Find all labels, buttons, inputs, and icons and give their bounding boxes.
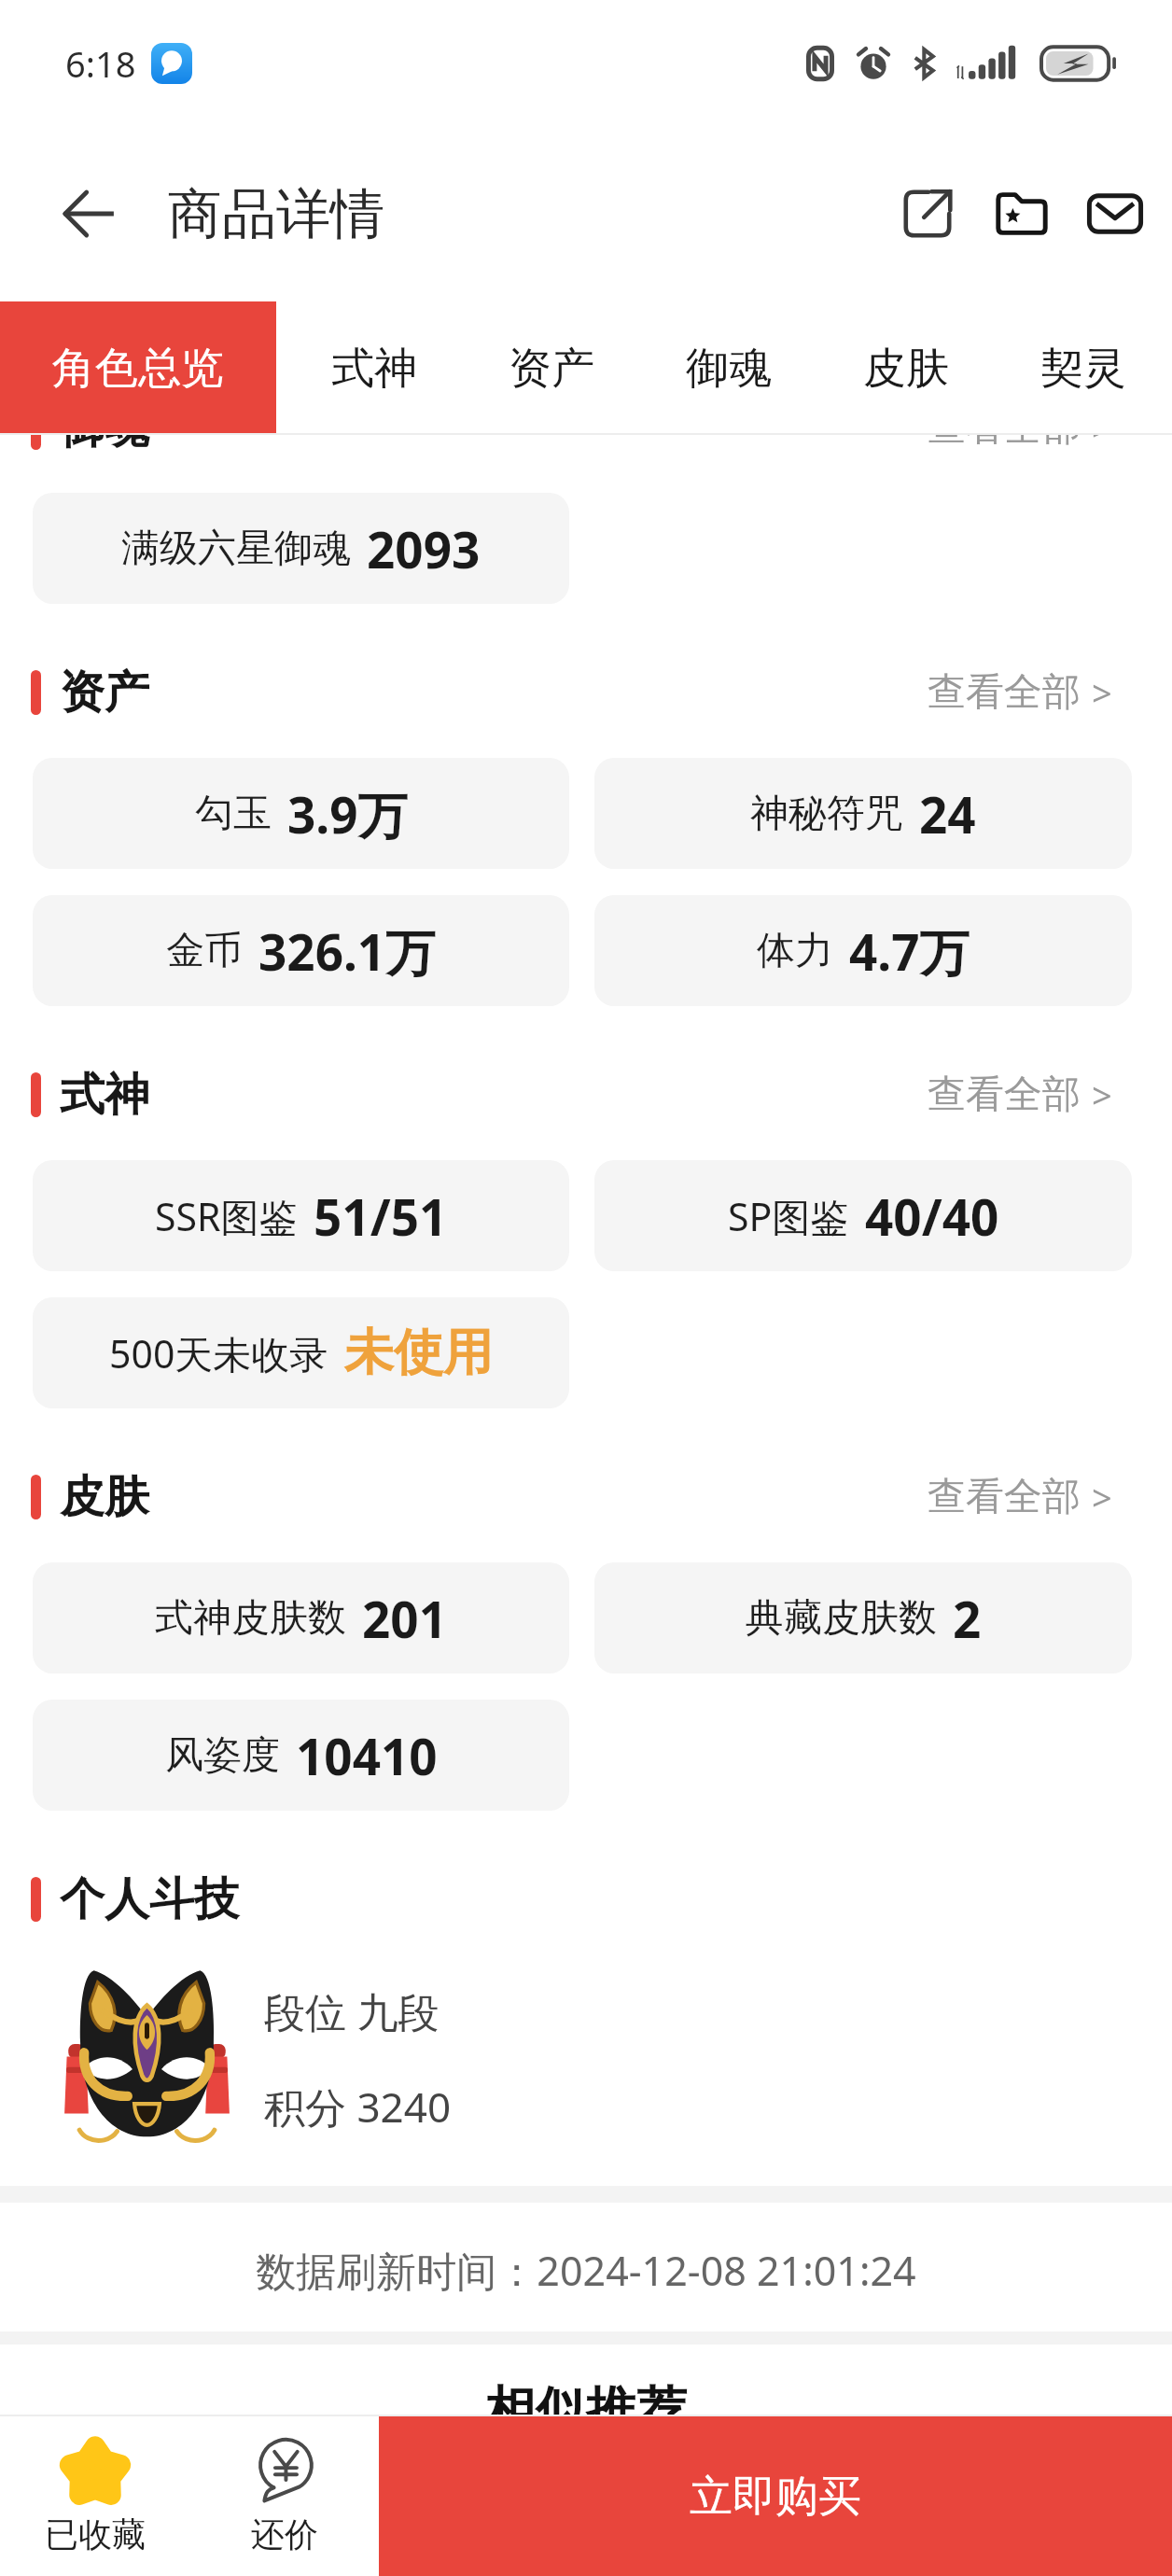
staticText: 还价 [251,2513,318,2555]
button[interactable]: 神秘符咒 [594,758,1132,869]
staticText: 51/51 [314,1183,448,1250]
button[interactable]: 满级六星御魂 [33,493,569,604]
staticText: 查看全部 [928,403,1081,452]
staticText: 查看全部 [928,668,1081,717]
staticText: 典藏皮肤数 [746,1594,937,1643]
staticText: 24 [919,780,976,847]
staticText: 相似推荐 [0,2379,1172,2443]
staticText: 商品详情 [168,180,384,248]
button[interactable]: Collect [975,167,1068,260]
staticText: > [1092,1473,1112,1521]
staticText: 契灵 [1040,342,1126,396]
button[interactable]: 立即购买 [379,2416,1172,2576]
staticText: 2 [953,1585,982,1652]
button[interactable]: 查看全部 [928,1473,1112,1521]
button[interactable]: 查看全部 [928,668,1112,717]
button[interactable]: 金币 [33,895,569,1006]
button[interactable]: 契灵 [995,301,1172,435]
button[interactable]: Share [881,167,974,260]
button[interactable]: 御魂 [640,301,817,435]
staticText: 2093 [367,515,481,582]
staticText: 40/40 [865,1183,999,1250]
staticText: > [1092,668,1112,717]
button[interactable]: 资产 [463,301,640,435]
staticText: 御魂 [686,342,772,396]
staticText: 神秘符咒 [750,790,903,838]
staticText: 勾玉 [195,790,272,838]
button[interactable]: 式神 [286,301,463,435]
button[interactable]: 体力 [594,895,1132,1006]
staticText: 资产 [509,342,594,396]
staticText: 金币 [166,927,243,975]
button[interactable]: 角色总览 [0,301,276,435]
staticText: 立即购买 [690,2470,861,2524]
button[interactable]: 风姿度 [33,1700,569,1811]
staticText: 式神皮肤数 [155,1594,346,1643]
staticText: 查看全部 [928,1071,1081,1119]
staticText: 御魂 [60,399,149,455]
button[interactable]: 查看全部 [928,403,1112,452]
staticText: 积分 3240 [264,2079,452,2135]
staticText: 已收藏 [45,2513,146,2555]
staticText: SSR图鉴 [155,1190,298,1242]
button[interactable]: 典藏皮肤数 [594,1562,1132,1673]
staticText: 资产 [60,665,149,721]
button[interactable]: 勾玉 [33,758,569,869]
staticText: 角色总览 [52,342,224,396]
button[interactable]: 查看全部 [928,1071,1112,1119]
button[interactable]: Messages [1068,167,1162,260]
staticText: 数据刷新时间：2024-12-08 21:01:24 [0,2243,1172,2298]
button[interactable]: 式神皮肤数 [33,1562,569,1673]
staticText: > [1092,403,1112,452]
staticText: 500天未收录 [109,1327,328,1379]
staticText: 式神 [331,342,417,396]
staticText: 个人斗技 [60,1871,239,1927]
staticText: 326.1万 [258,917,436,985]
staticText: 6:18 [65,39,136,88]
staticText: 3.9万 [287,780,408,847]
staticText: 201 [362,1585,447,1652]
staticText: 体力 [757,927,833,975]
button[interactable]: 皮肤 [817,301,995,435]
button[interactable]: SSR图鉴 [33,1160,569,1271]
staticText: > [1092,1071,1112,1119]
staticText: 10410 [296,1722,438,1789]
button[interactable]: SP图鉴 [594,1160,1132,1271]
staticText: 满级六星御魂 [121,525,351,573]
staticText: 4.7万 [849,917,970,985]
staticText: 皮肤 [60,1469,149,1525]
staticText: 风姿度 [165,1731,280,1780]
button[interactable]: 还价 [189,2416,379,2576]
button[interactable]: Back [38,163,139,264]
staticText: 未使用 [344,1322,493,1384]
button[interactable]: 已收藏 [0,2416,189,2576]
button[interactable]: 500天未收录 [33,1297,569,1408]
staticText: 式神 [60,1067,149,1123]
staticText: 皮肤 [863,342,949,396]
staticText: 查看全部 [928,1473,1081,1521]
staticText: 段位 九段 [264,1983,439,2039]
staticText: SP图鉴 [728,1190,849,1242]
